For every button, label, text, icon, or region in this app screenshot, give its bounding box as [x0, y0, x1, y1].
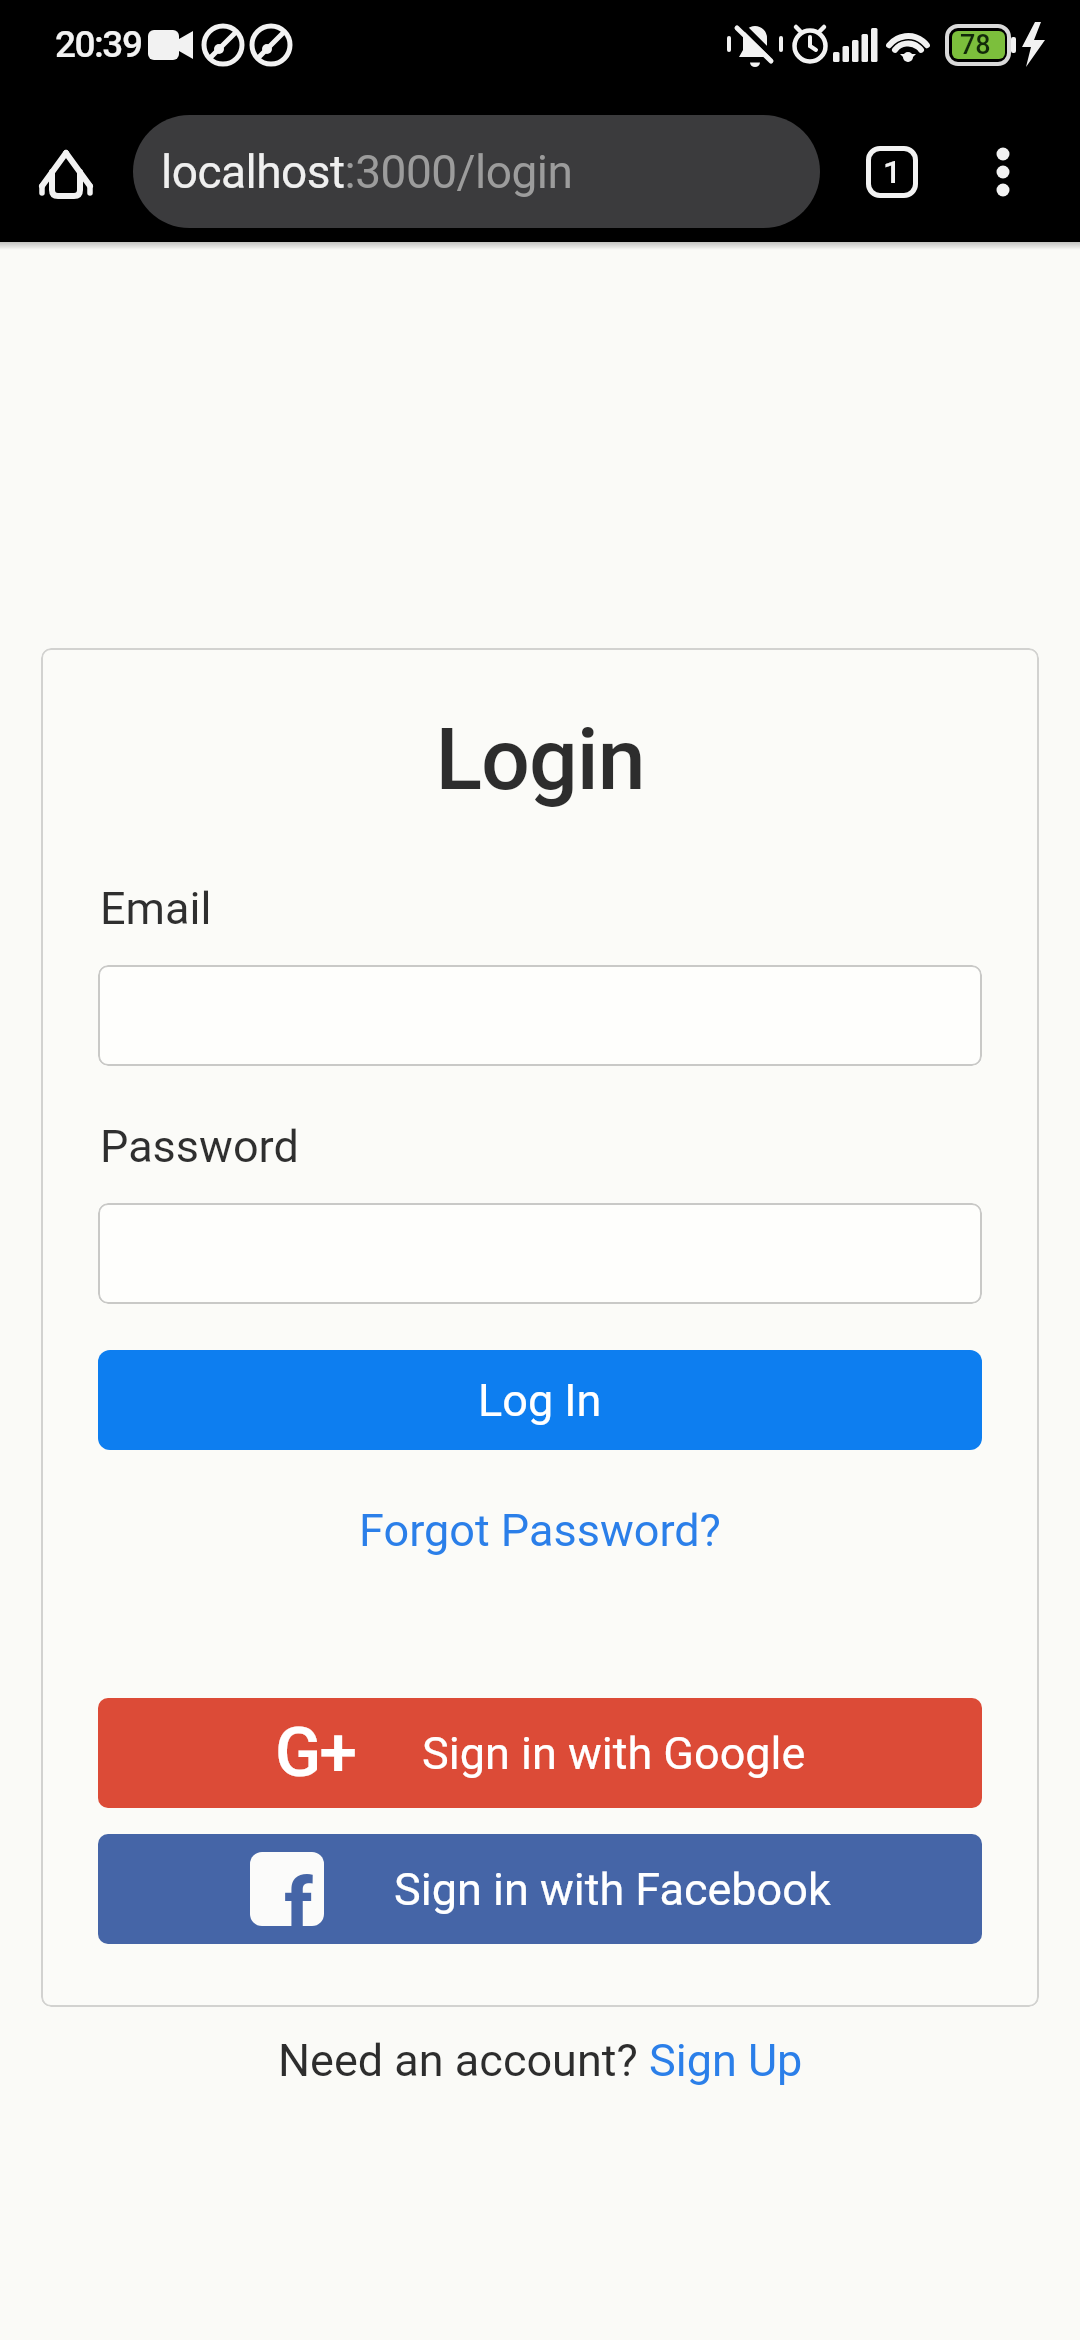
button[interactable]: G+ — [98, 1698, 982, 1808]
button[interactable]: Forgot Password? — [41, 1504, 1039, 1557]
button[interactable]: localhost:3000/login — [133, 115, 820, 228]
staticText: 78 — [960, 29, 991, 61]
staticText: Need an account? — [278, 2034, 649, 2087]
staticText: Email — [100, 882, 212, 935]
staticText: 20:39 — [55, 23, 142, 66]
button[interactable]: Sign Up — [649, 2034, 803, 2087]
staticText: Password — [100, 1120, 299, 1173]
button[interactable] — [978, 138, 1028, 208]
staticText: f — [284, 1861, 313, 1926]
button[interactable] — [30, 136, 104, 210]
staticText: Sign in with Google — [422, 1727, 806, 1780]
button[interactable] — [98, 1203, 982, 1304]
button[interactable]: 1 — [866, 146, 918, 198]
button[interactable]: f — [98, 1834, 982, 1944]
staticText: localhost:3000/login — [161, 145, 573, 199]
staticText: Sign in with Facebook — [394, 1863, 831, 1916]
button[interactable]: Log In — [98, 1350, 982, 1450]
staticText: Log In — [478, 1374, 602, 1427]
staticText: Login — [41, 709, 1039, 810]
staticText: 1 — [883, 153, 902, 191]
staticText: G+ — [275, 1713, 356, 1793]
button[interactable] — [98, 965, 982, 1066]
